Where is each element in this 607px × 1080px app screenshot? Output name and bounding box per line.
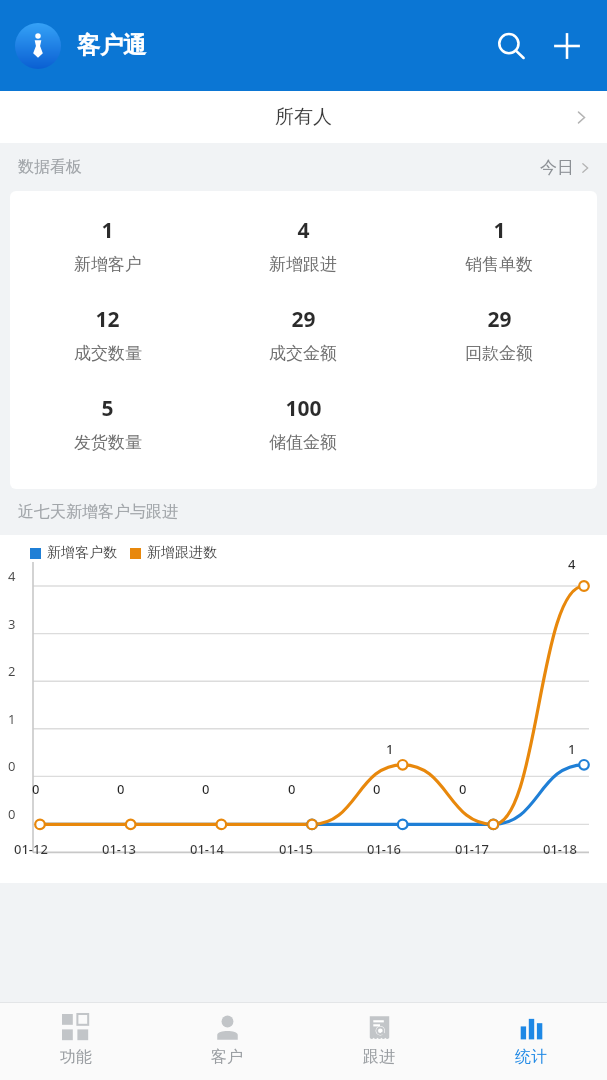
staticText: 今日 (540, 157, 574, 178)
button[interactable]: Search (483, 18, 539, 74)
staticText: 100 (285, 394, 322, 423)
staticText: 销售单数 (465, 254, 533, 275)
staticText: 0 (373, 780, 381, 798)
staticText: 回款金额 (465, 343, 533, 364)
staticText: 客户通 (77, 31, 146, 60)
staticText: 发货数量 (74, 432, 142, 453)
staticText: 数据看板 (18, 157, 82, 177)
staticText: 0 (202, 780, 210, 798)
staticText: 29 (487, 305, 512, 334)
staticText: 1 (101, 216, 114, 245)
staticText: 01-17 (455, 840, 489, 858)
staticText: 3 (8, 615, 16, 633)
button[interactable] (15, 23, 61, 69)
button[interactable]: Add (539, 18, 595, 74)
staticText: 0 (8, 757, 16, 775)
button[interactable]: 跟进 (303, 1003, 455, 1080)
staticText: 新增客户 (74, 254, 142, 275)
button[interactable]: 客户 (151, 1003, 303, 1080)
staticText: 01-14 (190, 840, 224, 858)
button[interactable]: 4 (205, 216, 401, 275)
staticText: 2 (8, 662, 16, 680)
staticText: 0 (8, 805, 16, 823)
button[interactable]: 100 (205, 394, 401, 453)
staticText: 客户 (211, 1047, 243, 1067)
staticText: 1 (8, 710, 16, 728)
button[interactable]: 功能 (0, 1003, 151, 1080)
staticText: 成交数量 (74, 343, 142, 364)
staticText: 成交金额 (269, 343, 337, 364)
staticText: 新增跟进 (269, 254, 337, 275)
button[interactable]: 所有人 (0, 91, 607, 143)
staticText: 0 (459, 780, 467, 798)
staticText: 5 (101, 394, 114, 423)
staticText: 01-16 (367, 840, 401, 858)
staticText: 0 (288, 780, 296, 798)
staticText: 统计 (515, 1047, 547, 1067)
staticText: 0 (32, 780, 40, 798)
button[interactable]: 今日 (540, 157, 591, 178)
staticText: 0 (117, 780, 125, 798)
staticText: 29 (291, 305, 316, 334)
staticText: 所有人 (275, 105, 332, 129)
staticText: 跟进 (363, 1047, 395, 1067)
staticText: 近七天新增客户与跟进 (18, 502, 178, 522)
button[interactable]: 5 (10, 394, 205, 453)
staticText: 储值金额 (269, 432, 337, 453)
staticText: 功能 (60, 1047, 92, 1067)
staticText: 12 (95, 305, 120, 334)
button[interactable]: 29 (205, 305, 401, 364)
staticText: 01-15 (279, 840, 313, 858)
staticText: 4 (568, 555, 576, 573)
staticText: 新增客户数 (47, 544, 117, 562)
staticText: 1 (493, 216, 506, 245)
staticText: 1 (386, 740, 394, 758)
staticText: 4 (297, 216, 310, 245)
button[interactable]: 29 (401, 305, 597, 364)
staticText: 01-13 (102, 840, 136, 858)
button[interactable]: 1 (401, 216, 597, 275)
staticText: 01-12 (14, 840, 48, 858)
staticText: 01-18 (543, 840, 577, 858)
button[interactable]: 12 (10, 305, 205, 364)
staticText: 4 (8, 567, 16, 585)
button[interactable]: 统计 (455, 1003, 607, 1080)
staticText: 新增跟进数 (147, 544, 217, 562)
button[interactable]: 1 (10, 216, 205, 275)
staticText: 1 (568, 740, 576, 758)
